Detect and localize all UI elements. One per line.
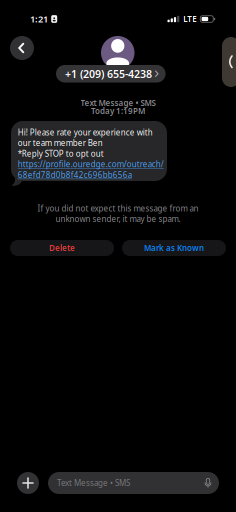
button[interactable]: Delete — [10, 240, 114, 256]
button[interactable]: Return to previous app — [222, 37, 236, 87]
button[interactable]: +1 (209) 655-4238 — [56, 65, 166, 82]
button[interactable]: Back — [10, 36, 34, 60]
button[interactable]: Mark as Known — [122, 240, 226, 256]
button[interactable]: Contact photo — [101, 36, 134, 69]
staticText: unknown sender, it may be spam. — [55, 214, 180, 224]
button[interactable]: Text Message • SMS — [48, 472, 219, 494]
staticText: Text Message • SMS — [57, 478, 130, 488]
staticText: *Reply STOP to opt out — [18, 148, 104, 159]
staticText: +1 (209) 655-4238 — [65, 67, 152, 81]
staticText: LTE — [183, 14, 196, 24]
staticText: https://profile.ouredge.com/outreach/ — [18, 159, 164, 169]
staticText: 68efd78d0b8f42c696bb656a — [18, 169, 132, 180]
staticText: Delete — [49, 243, 75, 253]
staticText: Text Message • SMS — [80, 97, 155, 108]
button[interactable]: Add attachment — [17, 472, 39, 494]
staticText: our team member Ben — [18, 138, 103, 148]
staticText: Today 1:19PM — [91, 106, 145, 116]
staticText: Hi! Please rate your experience with — [18, 127, 153, 138]
staticText: 1:21 — [30, 13, 48, 25]
staticText: If you did not expect this message from … — [37, 203, 198, 214]
staticText: Mark as Known — [144, 243, 204, 253]
